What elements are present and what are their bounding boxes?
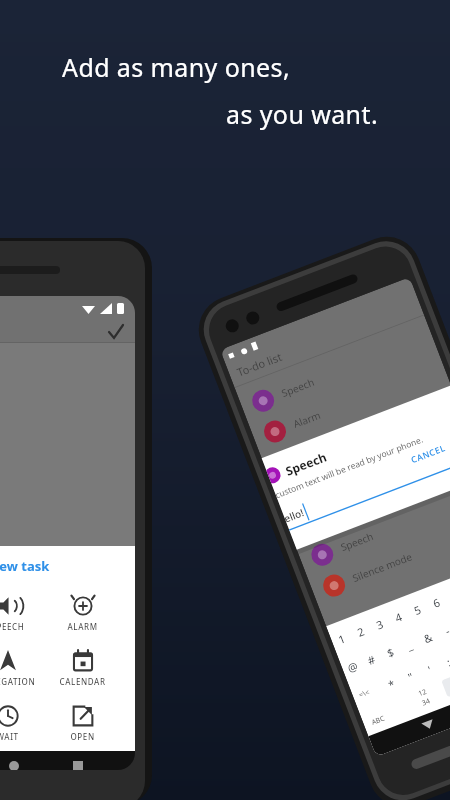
button[interactable]: Add as many ones, as you want [0, 0, 450, 800]
